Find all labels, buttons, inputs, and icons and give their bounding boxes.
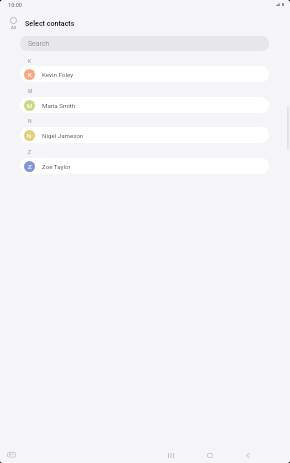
- staticText: Z: [28, 149, 31, 155]
- button[interactable]: Select all: [5, 17, 21, 30]
- button[interactable]: K: [20, 66, 269, 82]
- button[interactable]: Home: [202, 448, 217, 463]
- staticText: 10:00: [8, 2, 22, 8]
- button[interactable]: Back: [240, 448, 255, 463]
- staticText: Kevin Foley: [42, 71, 74, 78]
- staticText: K: [28, 58, 32, 64]
- staticText: All: [11, 25, 16, 30]
- staticText: M: [28, 88, 33, 94]
- button[interactable]: Hide keyboard: [4, 448, 19, 463]
- button[interactable]: N: [20, 127, 269, 143]
- staticText: Zoe Taylor: [42, 163, 71, 170]
- staticText: Z: [28, 163, 32, 170]
- staticText: M: [27, 102, 33, 109]
- button[interactable]: Recent apps: [163, 448, 178, 463]
- button[interactable]: M: [20, 97, 269, 113]
- staticText: Maria Smith: [42, 102, 76, 109]
- staticText: N: [27, 132, 32, 139]
- staticText: Search: [28, 40, 50, 48]
- staticText: Nigel Jameson: [42, 132, 84, 139]
- staticText: K: [28, 71, 32, 78]
- button[interactable]: Search: [20, 36, 269, 51]
- staticText: Select contacts: [25, 19, 75, 27]
- button[interactable]: Z: [20, 158, 269, 174]
- staticText: N: [28, 118, 32, 124]
